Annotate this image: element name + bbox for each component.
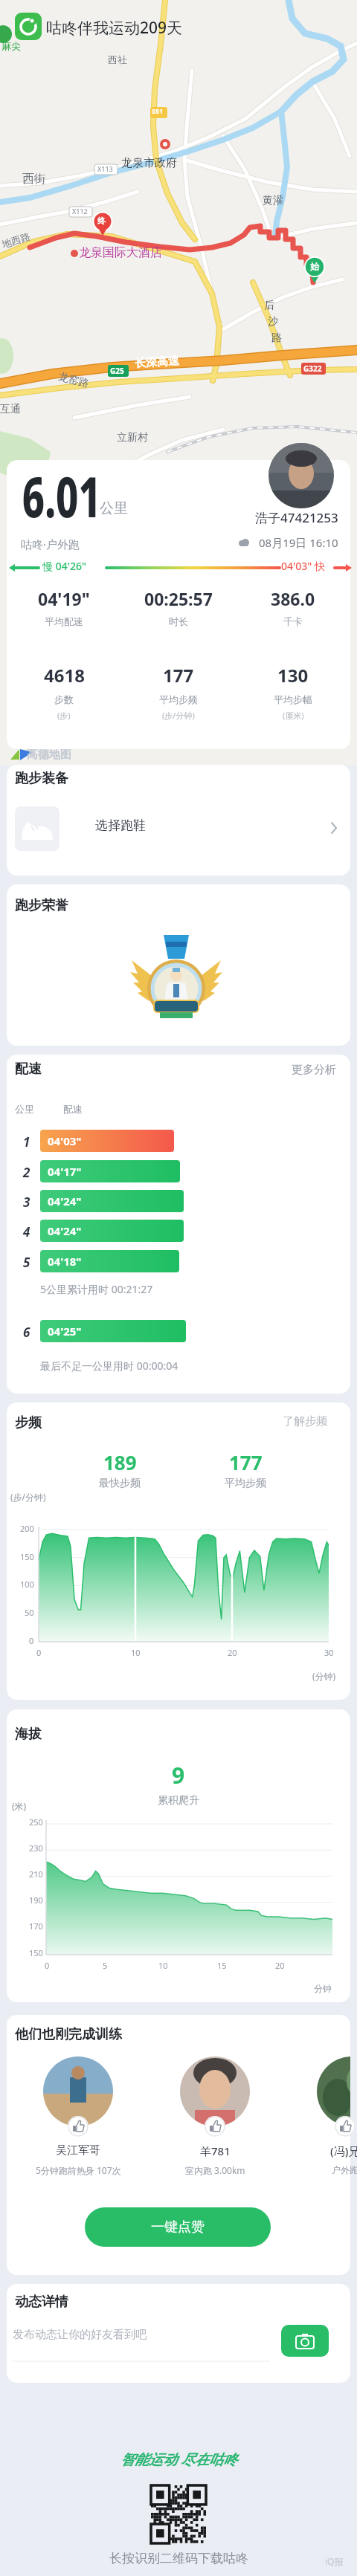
staticText: 5 bbox=[103, 1960, 108, 1971]
staticText: 04'24" bbox=[48, 1194, 82, 1208]
staticText: S51 bbox=[152, 106, 164, 115]
staticText: 50 bbox=[25, 1607, 34, 1618]
staticText: 00:25:57 bbox=[144, 587, 213, 610]
staticText: X112 bbox=[72, 207, 88, 216]
staticText: 5公里累计用时 00:21:27 bbox=[40, 1282, 153, 1296]
staticText: 立新村 bbox=[117, 431, 148, 444]
staticText: 羊781 bbox=[200, 2143, 231, 2158]
staticText: 4 bbox=[23, 1223, 30, 1240]
staticText: 08月19日 16:10 bbox=[259, 535, 338, 550]
button[interactable] bbox=[180, 2056, 250, 2126]
staticText: 西社 bbox=[108, 54, 127, 65]
staticText: 后 bbox=[264, 299, 274, 312]
staticText: 5 bbox=[23, 1254, 30, 1271]
staticText: (步/分钟) bbox=[162, 710, 195, 721]
staticText: 沙 bbox=[268, 315, 278, 329]
staticText: 发布动态让你的好友看到吧 bbox=[13, 2328, 147, 2342]
button[interactable] bbox=[317, 2056, 350, 2126]
staticText: 平均步幅 bbox=[274, 693, 312, 705]
staticText: 分钟 bbox=[314, 1983, 332, 1994]
staticText: 230 bbox=[29, 1842, 43, 1854]
staticText: 170 bbox=[29, 1920, 43, 1932]
staticText: 吴江军哥 bbox=[56, 2143, 100, 2158]
staticText: 长深高速 bbox=[134, 354, 180, 371]
staticText: 190 bbox=[29, 1894, 43, 1906]
staticText: 0 bbox=[29, 1635, 34, 1646]
staticText: 千卡 bbox=[283, 615, 303, 627]
button[interactable] bbox=[15, 806, 341, 851]
staticText: 04'24" bbox=[48, 1223, 82, 1238]
staticText: 最后不足一公里用时 00:00:04 bbox=[40, 1359, 178, 1373]
staticText: 4618 bbox=[44, 663, 85, 687]
staticText: iQ报 bbox=[325, 2555, 344, 2567]
staticText: 0 bbox=[36, 1647, 42, 1658]
staticText: 平均步频 bbox=[225, 1477, 266, 1490]
staticText: 一键点赞 bbox=[151, 2219, 205, 2236]
staticText: 1 bbox=[23, 1133, 30, 1151]
staticText: (米) bbox=[12, 1800, 27, 1812]
staticText: 最快步频 bbox=[99, 1477, 141, 1490]
staticText: 时长 bbox=[169, 615, 188, 627]
staticText: 200 bbox=[20, 1523, 34, 1534]
staticText: 慢 04'26" bbox=[42, 559, 86, 573]
staticText: 智能运动 尽在咕咚 bbox=[120, 2450, 237, 2469]
staticText: 04'19" bbox=[38, 587, 90, 610]
staticText: 386.0 bbox=[271, 587, 315, 610]
staticText: 户外跑 bbox=[332, 2164, 357, 2175]
staticText: 177 bbox=[229, 1449, 263, 1475]
staticText: 室内跑 3.00km bbox=[185, 2164, 245, 2176]
staticText: 咕咚伴我运动209天 bbox=[46, 17, 183, 39]
staticText: 6 bbox=[23, 1324, 30, 1341]
staticText: 更多分析 bbox=[292, 1063, 336, 1077]
button[interactable]: 发布动态让你的好友看到吧 bbox=[13, 2325, 273, 2362]
staticText: 210 bbox=[29, 1868, 43, 1880]
staticText: 15 bbox=[217, 1960, 227, 1971]
button[interactable] bbox=[15, 806, 59, 851]
staticText: 麻尖 bbox=[1, 40, 21, 52]
staticText: 189 bbox=[103, 1449, 137, 1475]
staticText: 100 bbox=[20, 1579, 34, 1590]
staticText: 公里 bbox=[15, 1103, 34, 1115]
staticText: 20 bbox=[275, 1960, 285, 1971]
button[interactable]: 一键点赞 bbox=[85, 2207, 271, 2247]
staticText: 始 bbox=[310, 261, 319, 272]
staticText: 平均步频 bbox=[159, 693, 198, 705]
staticText: 海拔 bbox=[15, 1726, 42, 1743]
staticText: 04'18" bbox=[48, 1254, 82, 1269]
staticText: 配速 bbox=[63, 1103, 83, 1115]
button[interactable]: 了解步频 bbox=[283, 1414, 342, 1432]
staticText: 跑步荣誉 bbox=[15, 897, 68, 914]
staticText: (厘米) bbox=[283, 710, 304, 721]
staticText: 选择跑鞋 bbox=[95, 818, 146, 833]
staticText: 3 bbox=[23, 1194, 30, 1211]
staticText: 平均配速 bbox=[45, 615, 83, 627]
staticText: (分钟) bbox=[312, 1670, 336, 1682]
staticText: 累积爬升 bbox=[158, 1794, 199, 1808]
staticText: 龙窑路 bbox=[57, 370, 90, 391]
staticText: 177 bbox=[163, 663, 194, 687]
button[interactable] bbox=[43, 2056, 113, 2126]
staticText: (步) bbox=[57, 710, 71, 721]
staticText: 配速 bbox=[15, 1061, 42, 1078]
staticText: 公里 bbox=[100, 499, 128, 517]
staticText: 路 bbox=[271, 331, 282, 345]
staticText: 黄灌 bbox=[263, 194, 283, 207]
staticText: 6.01 bbox=[22, 458, 101, 534]
staticText: 30 bbox=[324, 1647, 334, 1658]
staticText: 龙泉市政府 bbox=[121, 156, 177, 170]
staticText: 他们也刚完成训练 bbox=[15, 2026, 122, 2043]
staticText: 250 bbox=[29, 1816, 43, 1828]
staticText: 9 bbox=[172, 1760, 185, 1790]
staticText: 步频 bbox=[15, 1414, 42, 1431]
button[interactable] bbox=[281, 2325, 329, 2357]
staticText: 咕咚·户外跑 bbox=[21, 537, 80, 551]
staticText: X113 bbox=[97, 164, 113, 173]
staticText: G25 bbox=[110, 366, 124, 376]
staticText: 高德地图 bbox=[27, 748, 71, 762]
staticText: 动态详情 bbox=[15, 2294, 68, 2311]
button[interactable] bbox=[15, 13, 42, 40]
staticText: 150 bbox=[29, 1947, 43, 1958]
button[interactable]: 更多分析 bbox=[292, 1063, 342, 1081]
staticText: 04'03" 快 bbox=[281, 559, 325, 573]
staticText: 04'25" bbox=[48, 1324, 82, 1339]
